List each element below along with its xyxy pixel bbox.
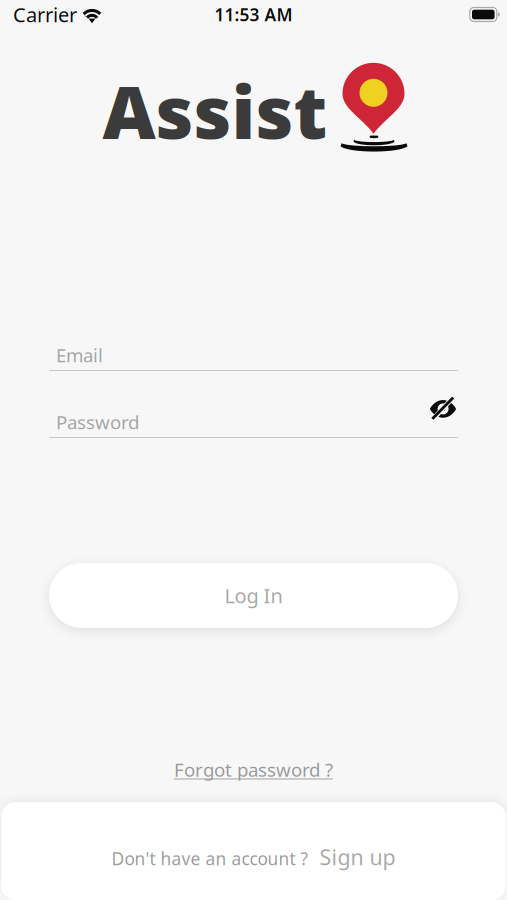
staticText: Log In [224, 582, 282, 609]
staticText: Password [56, 410, 139, 434]
staticText: Forgot password ? [174, 757, 333, 782]
button[interactable]: Show password [429, 409, 458, 434]
staticText: Email [56, 343, 103, 367]
button[interactable]: Sign up [308, 843, 395, 871]
staticText: Sign up [319, 843, 395, 871]
staticText: 11:53 AM [214, 3, 292, 26]
staticText: Carrier [13, 1, 77, 28]
button[interactable]: Email [49, 340, 458, 370]
staticText: Assist [102, 62, 327, 159]
button[interactable]: Log In [49, 563, 458, 628]
button[interactable]: Forgot password ? [168, 753, 339, 786]
button[interactable]: Password [49, 407, 429, 437]
staticText: Don't have an account ? [111, 847, 308, 870]
